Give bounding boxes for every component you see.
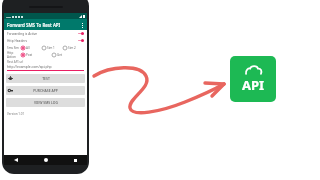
button[interactable]: More options xyxy=(79,22,85,28)
staticText: Version 1.01 xyxy=(7,112,25,116)
button[interactable]: All xyxy=(21,46,42,50)
button[interactable]: Sim 1 xyxy=(42,46,63,50)
button[interactable]: Back xyxy=(12,156,20,164)
button[interactable]: Post xyxy=(21,53,52,57)
staticText: Forward SMS To Rest API xyxy=(7,22,61,28)
staticText: Sms Sim xyxy=(7,46,21,50)
staticText: PURCHASE APP xyxy=(33,88,58,93)
button[interactable]: API xyxy=(230,56,276,102)
button[interactable]: Home xyxy=(42,156,50,164)
staticText: All xyxy=(26,46,30,50)
staticText: API xyxy=(242,76,265,94)
staticText: Post xyxy=(26,53,33,57)
button[interactable]: Get xyxy=(52,53,84,57)
button[interactable]: Recents xyxy=(71,156,79,164)
button[interactable]: Http Headers xyxy=(4,37,87,44)
button[interactable]: VIEW SMS LOG xyxy=(6,98,85,107)
staticText: Get xyxy=(57,53,62,57)
button[interactable]: PURCHASE APP xyxy=(6,86,85,95)
staticText: Sim 2 xyxy=(68,46,76,50)
staticText: TEST xyxy=(42,76,50,81)
staticText: Http Action xyxy=(7,51,21,58)
staticText: 4:56 xyxy=(6,15,11,18)
staticText: Forwarding is Active xyxy=(7,32,78,36)
button[interactable]: Sim 2 xyxy=(63,46,84,50)
staticText: VIEW SMS LOG xyxy=(34,100,58,105)
button[interactable]: TEST xyxy=(6,74,85,83)
button[interactable]: Forwarding is Active xyxy=(4,30,87,37)
staticText: Sim 1 xyxy=(47,46,55,50)
staticText: Rest API url xyxy=(7,60,24,64)
staticText: Http Headers xyxy=(7,39,78,43)
staticText: http://example.com/api.php xyxy=(7,64,52,69)
